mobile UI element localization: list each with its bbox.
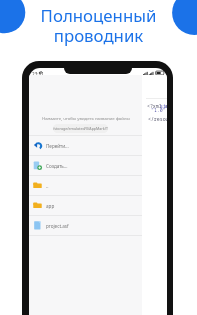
button[interactable]: Создать... bbox=[29, 156, 142, 175]
button[interactable]: .. bbox=[29, 176, 142, 195]
staticText: Создать... bbox=[46, 163, 68, 169]
button[interactable]: app bbox=[29, 196, 142, 215]
staticText: app bbox=[46, 203, 55, 209]
staticText: .. bbox=[46, 183, 49, 189]
staticText: 23:11 bbox=[32, 71, 44, 77]
button[interactable]: project.asf bbox=[29, 216, 142, 235]
button[interactable]: Перейти... bbox=[29, 136, 142, 155]
staticText: sion bbox=[160, 103, 167, 110]
staticText: Нажмите, чтобы увидеть название файлы bbox=[42, 115, 130, 121]
staticText: </resource bbox=[148, 116, 167, 123]
button[interactable]: /storage/emulated/0/AppMark/Test bbox=[53, 124, 108, 133]
staticText: <?xml ver bbox=[147, 103, 167, 110]
staticText: Перейти... bbox=[46, 143, 69, 149]
staticText: "1.0" e bbox=[151, 107, 167, 114]
staticText: project.asf bbox=[46, 223, 69, 229]
staticText: Полноценный проводник bbox=[0, 4, 197, 47]
staticText: /storage/emulated/0/AppMark/Test bbox=[53, 126, 108, 131]
